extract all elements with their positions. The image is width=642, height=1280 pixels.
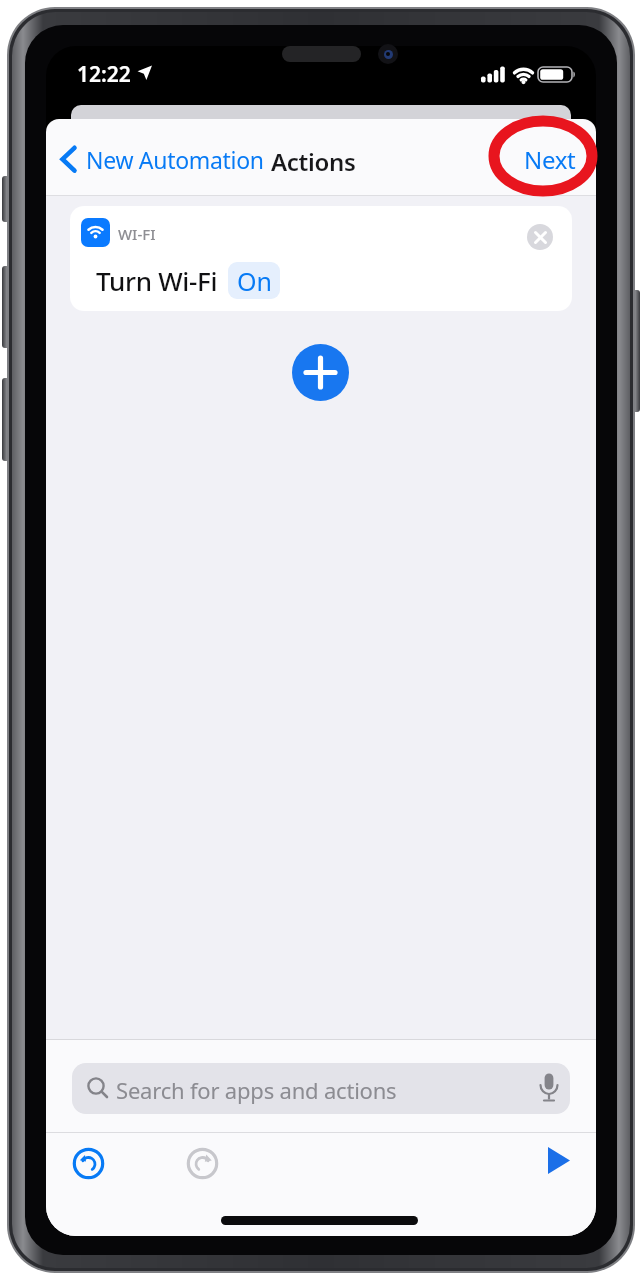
button[interactable]: Next (512, 135, 588, 183)
staticText: New Automation (86, 144, 264, 175)
button[interactable] (186, 1147, 219, 1180)
button[interactable] (72, 1147, 105, 1180)
staticText: Turn Wi-Fi (96, 263, 218, 298)
staticText: Actions (271, 145, 356, 178)
button[interactable]: New Automation (52, 135, 282, 183)
staticText: Search for apps and actions (116, 1075, 397, 1105)
button[interactable] (540, 1141, 580, 1185)
staticText: On (237, 264, 272, 298)
button[interactable] (527, 224, 553, 250)
button[interactable]: WI-FI (70, 206, 572, 311)
staticText: WI-FI (118, 224, 156, 244)
button[interactable] (292, 344, 349, 401)
button[interactable]: Search for apps and actions (72, 1063, 570, 1114)
staticText: 12:22 (77, 60, 131, 89)
button[interactable]: On (228, 262, 280, 299)
staticText: Next (524, 143, 576, 176)
